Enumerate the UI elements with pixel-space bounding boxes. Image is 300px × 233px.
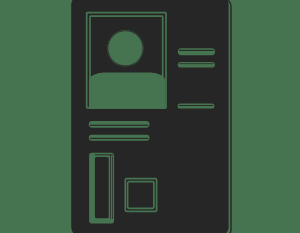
button[interactable]: Contact card bbox=[0, 0, 300, 233]
